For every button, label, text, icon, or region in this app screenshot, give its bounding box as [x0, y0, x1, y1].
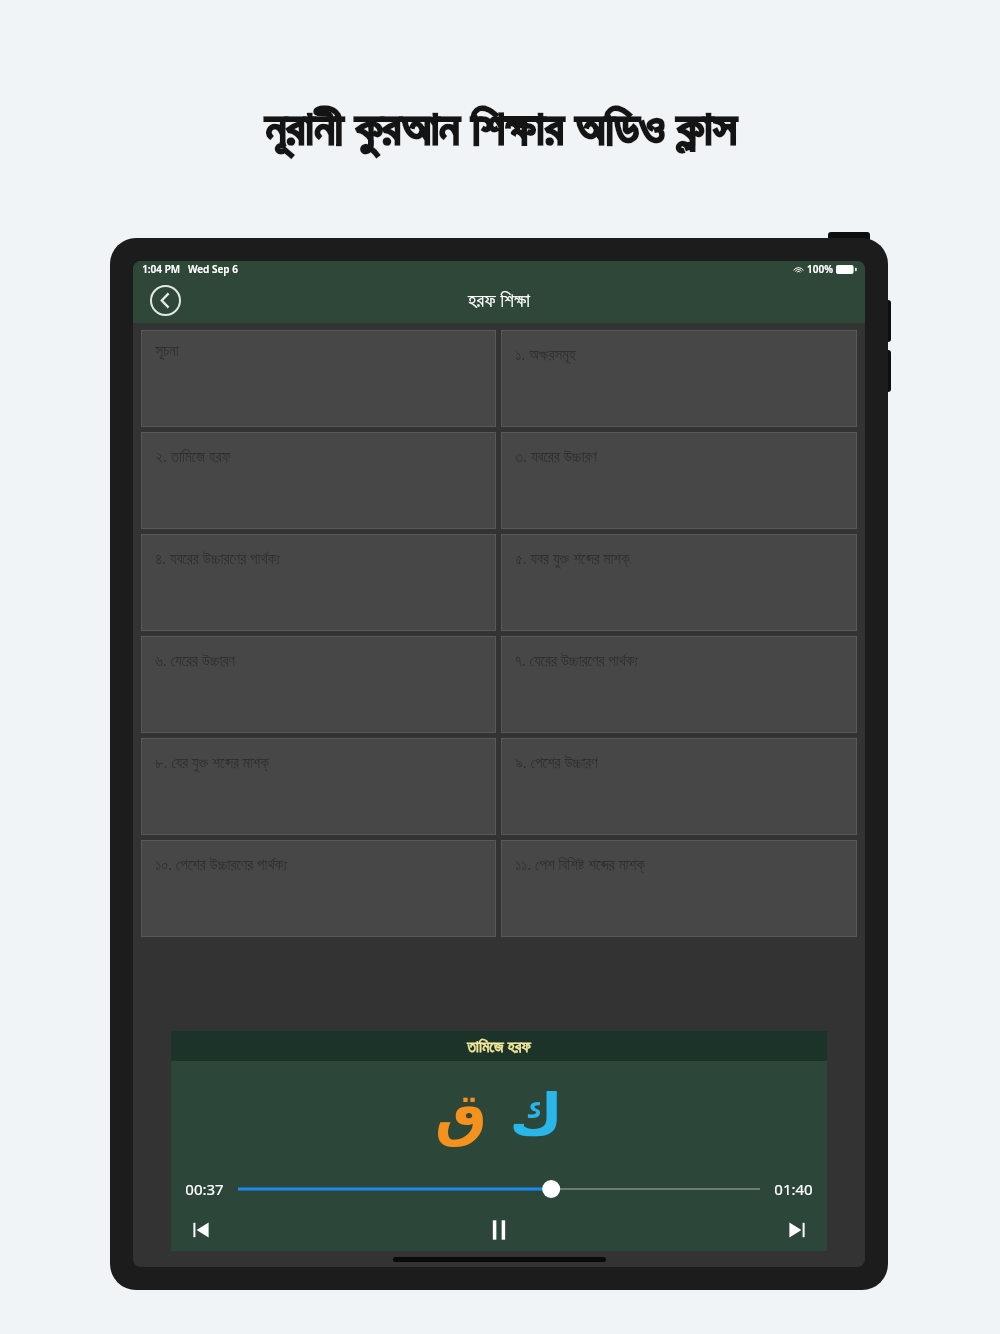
button[interactable]: সূচনা: [141, 330, 496, 427]
button[interactable]: ৯. পেশের উচ্চারণ: [501, 738, 857, 835]
staticText: 100%: [807, 262, 833, 276]
staticText: ২. তামিজে হরফ: [155, 446, 231, 466]
staticText: সূচনা: [155, 344, 179, 359]
button[interactable]: Pause: [478, 1209, 520, 1251]
staticText: 1:04 PM Wed Sep 6: [142, 262, 238, 276]
button[interactable]: Back: [147, 282, 183, 318]
staticText: হরফ শিক্ষা: [468, 287, 530, 313]
staticText: ৯. পেশের উচ্চারণ: [515, 752, 598, 772]
staticText: 00:37: [185, 1179, 224, 1199]
staticText: ১. অক্ষরসমূহ: [515, 344, 576, 364]
button[interactable]: ৭. যেরের উচ্চারণের পার্থক্য: [501, 636, 857, 733]
button[interactable]: ৮. যের যুক্ত শব্দের মাশক্: [141, 738, 496, 835]
staticText: ৬. যেরের উচ্চারণ: [155, 650, 235, 670]
button[interactable]: Previous: [181, 1210, 221, 1250]
button[interactable]: [238, 1169, 760, 1209]
staticText: ৪. যবরের উচ্চারণের পার্থক্য: [155, 548, 280, 568]
staticText: ৭. যেরের উচ্চারণের পার্থক্য: [515, 650, 638, 670]
button[interactable]: ২. তামিজে হরফ: [141, 432, 496, 529]
staticText: ১১. পেশ বিশিষ্ট শব্দের মাশক্: [515, 854, 645, 874]
staticText: ১০. পেশের উচ্চারণের পার্থক্য: [155, 854, 287, 874]
button[interactable]: ১. অক্ষরসমূহ: [501, 330, 857, 427]
staticText: নূরানী কুরআন শিক্ষার অডিও ক্লাস: [264, 95, 736, 159]
staticText: ৩. যবরের উচ্চারণ: [515, 446, 597, 466]
staticText: ৮. যের যুক্ত শব্দের মাশক্: [155, 752, 269, 772]
button[interactable]: ১১. পেশ বিশিষ্ট শব্দের মাশক্: [501, 840, 857, 937]
button[interactable]: Next: [777, 1210, 817, 1250]
staticText: ك: [509, 1081, 563, 1149]
button[interactable]: ৫. যবর যুক্ত শব্দের মাশক্: [501, 534, 857, 631]
staticText: তামিজে হরফ: [467, 1035, 531, 1057]
button[interactable]: ১০. পেশের উচ্চারণের পার্থক্য: [141, 840, 496, 937]
button[interactable]: ৬. যেরের উচ্চারণ: [141, 636, 496, 733]
button[interactable]: ৪. যবরের উচ্চারণের পার্থক্য: [141, 534, 496, 631]
staticText: ৫. যবর যুক্ত শব্দের মাশক্: [515, 548, 630, 568]
button[interactable]: ৩. যবরের উচ্চারণ: [501, 432, 857, 529]
staticText: 01:40: [774, 1179, 813, 1199]
staticText: ق: [435, 1081, 487, 1149]
